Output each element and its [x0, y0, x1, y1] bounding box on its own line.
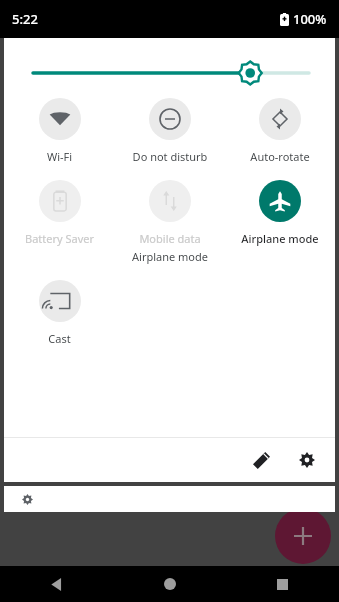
staticText: 100%: [293, 10, 327, 28]
button[interactable]: Add: [275, 508, 331, 564]
staticText: 5:22: [12, 10, 38, 28]
button[interactable]: Home: [113, 566, 226, 602]
button[interactable]: Settings: [287, 440, 327, 480]
staticText: Cast: [4, 331, 115, 346]
button[interactable]: Airplane mode: [225, 180, 335, 246]
button[interactable]: Back: [0, 566, 113, 602]
button[interactable]: Edit: [241, 440, 281, 480]
staticText: Wi-Fi: [4, 149, 115, 164]
staticText: Airplane mode: [225, 231, 335, 246]
staticText: Mobile data: [115, 231, 225, 246]
staticText: Airplane mode: [115, 249, 225, 264]
staticText: Auto-rotate: [225, 149, 335, 164]
button[interactable]: Do not disturb: [115, 98, 225, 164]
staticText: Battery Saver: [4, 231, 115, 246]
button[interactable]: Wi-Fi: [4, 98, 115, 164]
button[interactable]: Mobile data: [115, 180, 225, 264]
staticText: Do not disturb: [115, 149, 225, 164]
button[interactable]: Cast: [4, 280, 115, 346]
button[interactable]: [4, 486, 335, 512]
button[interactable]: Battery Saver: [4, 180, 115, 246]
button[interactable]: Auto-rotate: [225, 98, 335, 164]
button[interactable]: Recents: [226, 566, 339, 602]
